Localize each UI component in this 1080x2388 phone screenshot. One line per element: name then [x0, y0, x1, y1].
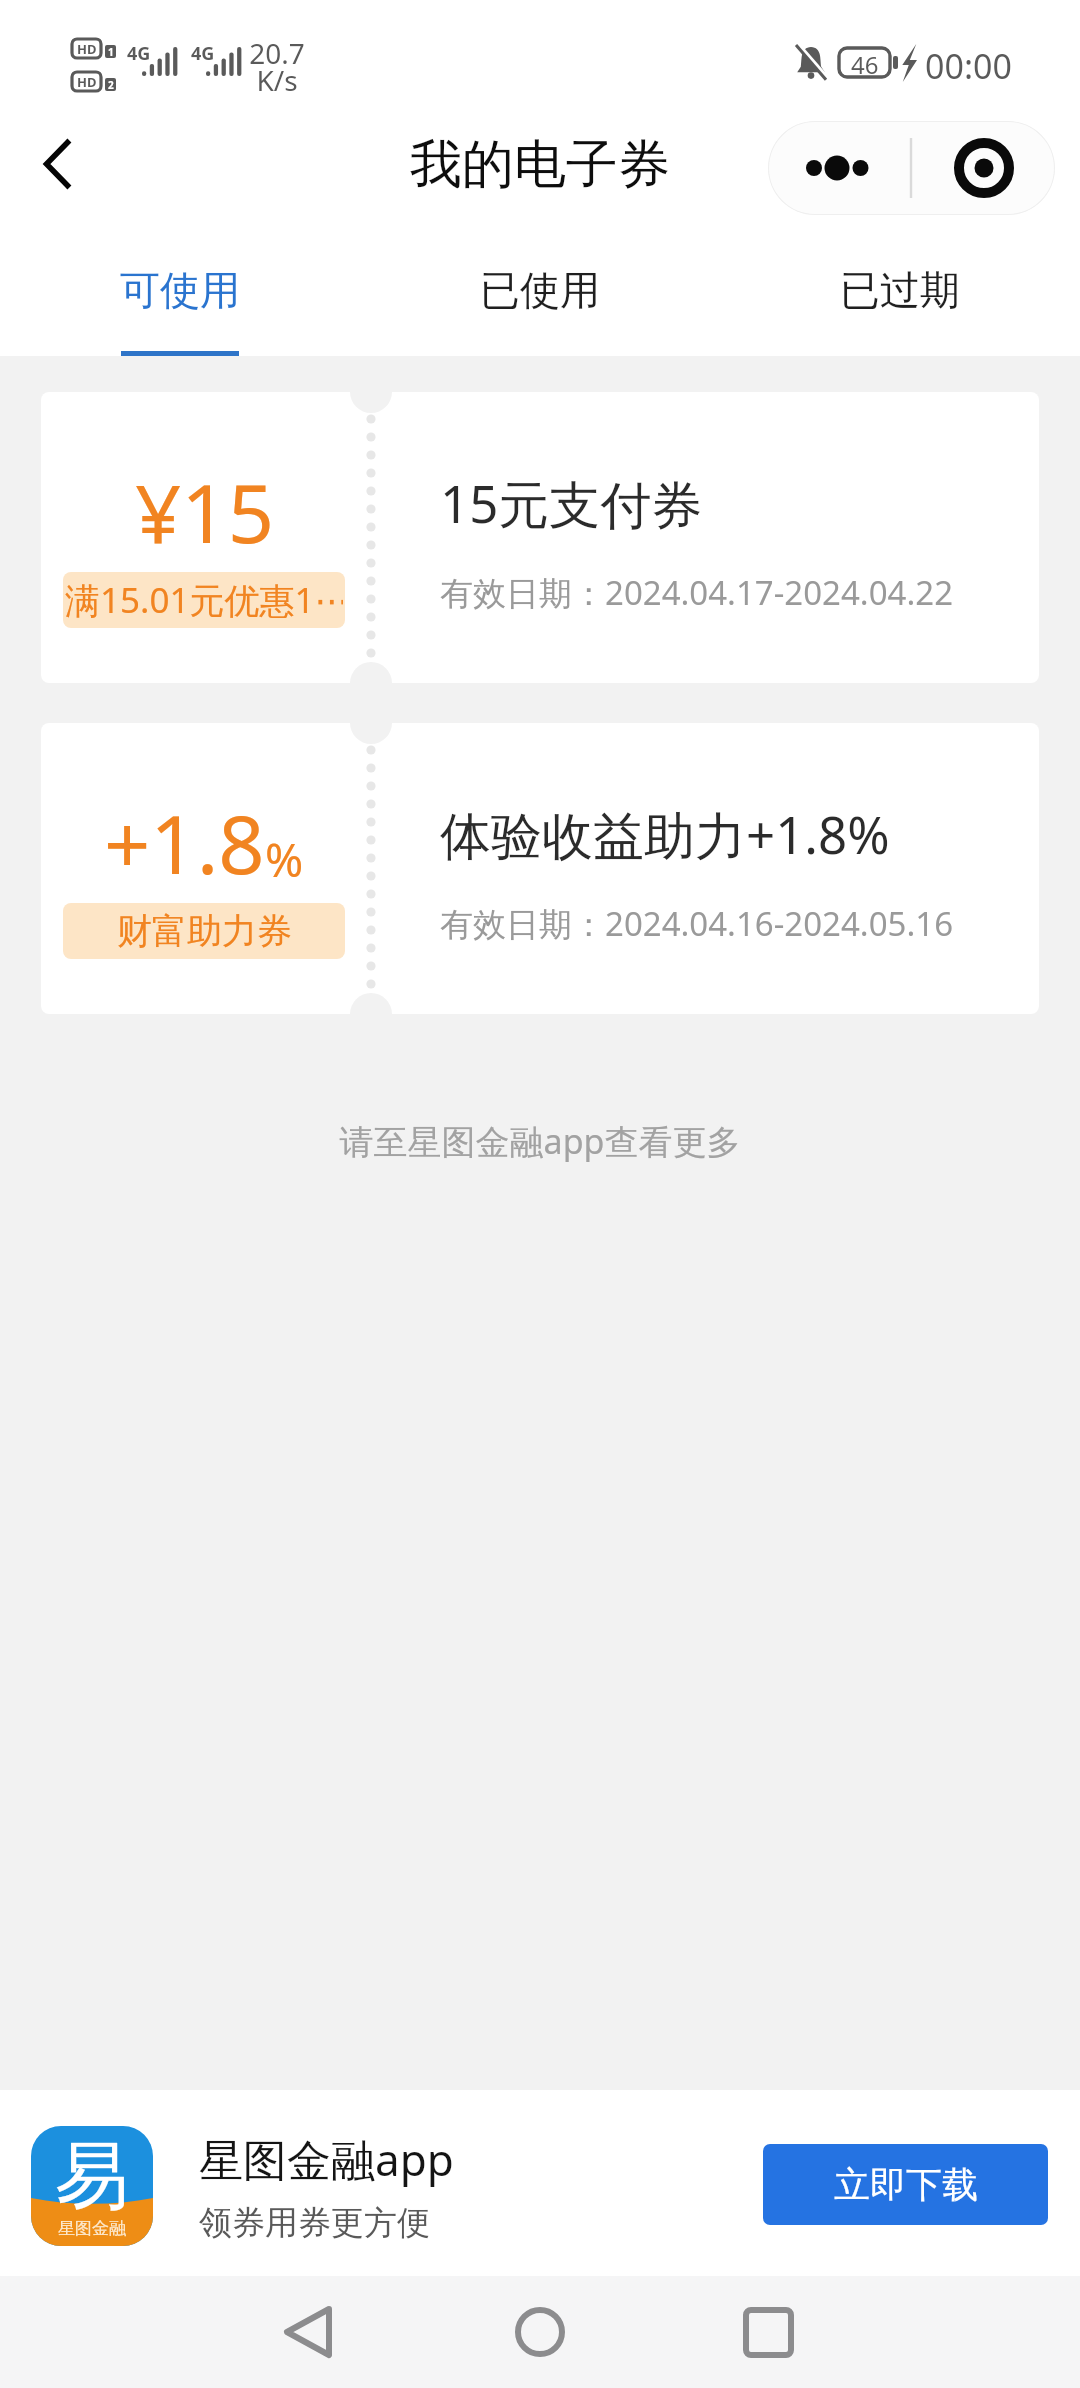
staticText: K/s	[247, 61, 307, 99]
staticText: 满15.01元优惠1⋯	[65, 576, 343, 624]
button[interactable]: 已过期	[720, 248, 1080, 356]
staticText: 领券用券更方便	[199, 2202, 430, 2244]
staticText: 财富助力券	[117, 909, 292, 953]
button[interactable]: +1.8	[41, 723, 1039, 1014]
staticText: 体验收益助力+1.8%	[440, 799, 890, 869]
staticText: 可使用	[120, 265, 240, 315]
button[interactable]: Home	[480, 2276, 600, 2388]
staticText: 立即下载	[834, 2162, 978, 2207]
staticText: 请至星图金融app查看更多	[0, 1118, 1080, 1164]
staticText: 易	[55, 2130, 129, 2223]
staticText: 00:00	[925, 43, 1012, 89]
button[interactable]: 立即下载	[763, 2144, 1048, 2225]
staticText: HD	[77, 40, 97, 58]
staticText: %	[265, 828, 304, 891]
staticText: 4G	[127, 41, 151, 66]
button[interactable]: Back	[17, 124, 97, 204]
staticText: ¥15	[135, 456, 274, 566]
button[interactable]: Recent apps	[708, 2276, 828, 2388]
staticText: 星图金融app	[199, 2129, 454, 2189]
staticText: 星图金融	[58, 2218, 126, 2239]
staticText: 已使用	[480, 265, 600, 315]
button[interactable]: Back	[248, 2276, 368, 2388]
staticText: 15元支付券	[440, 468, 703, 538]
staticText: 有效日期：2024.04.17-2024.04.22	[440, 570, 954, 615]
staticText: 20.7	[247, 34, 307, 72]
button[interactable]: ¥15	[41, 392, 1039, 683]
staticText: 46	[851, 48, 879, 77]
button[interactable]: 可使用	[0, 248, 360, 356]
staticText: 1	[108, 45, 114, 58]
staticText: HD	[77, 73, 97, 91]
staticText: 4G	[191, 41, 215, 66]
button[interactable]: 已使用	[360, 248, 720, 356]
staticText: +1.8	[104, 787, 265, 897]
staticText: 2	[108, 78, 114, 91]
staticText: 已过期	[840, 265, 960, 315]
staticText: 我的电子券	[410, 132, 670, 198]
button[interactable]: More options	[768, 121, 1055, 215]
staticText: 有效日期：2024.04.16-2024.05.16	[440, 901, 954, 946]
